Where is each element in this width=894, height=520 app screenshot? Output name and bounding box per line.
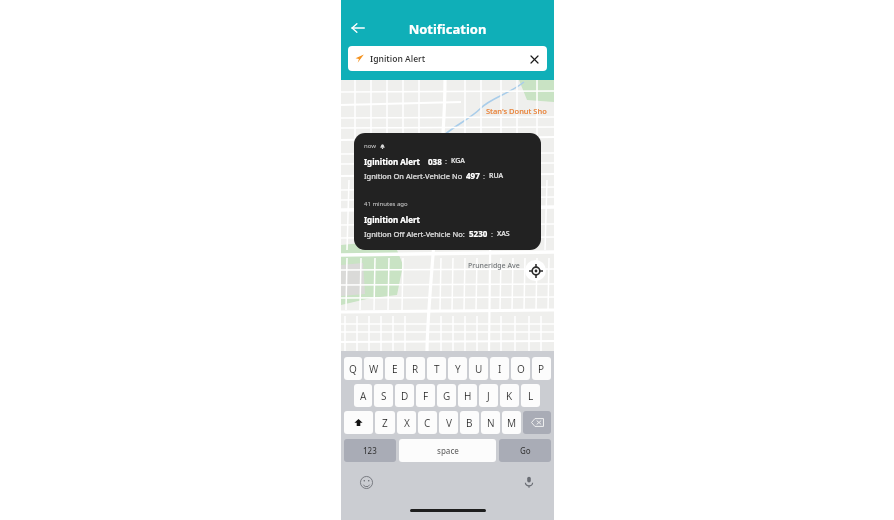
button[interactable]: Q bbox=[344, 357, 362, 380]
button[interactable]: P bbox=[532, 357, 551, 380]
staticText: E bbox=[392, 362, 398, 376]
button[interactable]: Go bbox=[499, 439, 551, 462]
staticText: 41 minutes ago bbox=[364, 200, 408, 208]
button[interactable]: B bbox=[460, 411, 479, 434]
button[interactable]: U bbox=[469, 357, 488, 380]
button[interactable]: O bbox=[511, 357, 530, 380]
button[interactable]: N bbox=[481, 411, 500, 434]
button[interactable]: Y bbox=[448, 357, 467, 380]
button[interactable]: Shift bbox=[344, 411, 373, 434]
button[interactable]: W bbox=[364, 357, 383, 380]
button[interactable]: I bbox=[490, 357, 509, 380]
button[interactable]: L bbox=[521, 384, 540, 407]
button[interactable]: J bbox=[479, 384, 498, 407]
staticText: Z bbox=[382, 416, 388, 430]
staticText: H bbox=[464, 389, 472, 403]
staticText: T bbox=[434, 362, 440, 376]
button[interactable]: Back bbox=[344, 14, 372, 42]
staticText: Go bbox=[520, 445, 531, 456]
staticText: D bbox=[401, 389, 409, 403]
button[interactable]: H bbox=[458, 384, 477, 407]
staticText: 123 bbox=[363, 445, 377, 456]
button[interactable]: Backspace bbox=[523, 411, 551, 434]
button[interactable]: M bbox=[502, 411, 521, 434]
staticText: B bbox=[466, 416, 473, 430]
staticText: Y bbox=[455, 362, 461, 376]
staticText: 038 bbox=[428, 156, 442, 167]
staticText: Iginition Alert bbox=[364, 156, 421, 167]
staticText: : bbox=[445, 156, 448, 166]
button[interactable]: K bbox=[500, 384, 519, 407]
staticText: A bbox=[360, 389, 367, 403]
button[interactable]: F bbox=[416, 384, 435, 407]
staticText: 497 bbox=[466, 170, 480, 181]
button[interactable]: Voice input bbox=[521, 474, 537, 490]
staticText: Pruneridge Ave bbox=[468, 261, 520, 271]
staticText: now bbox=[364, 142, 376, 150]
staticText: Ignition Alert bbox=[370, 53, 528, 65]
staticText: U bbox=[475, 362, 483, 376]
staticText: F bbox=[423, 389, 429, 403]
button[interactable]: C bbox=[418, 411, 437, 434]
staticText: J bbox=[487, 389, 490, 403]
button[interactable]: D bbox=[395, 384, 414, 407]
staticText: O bbox=[517, 362, 525, 376]
button[interactable]: Emoji bbox=[358, 474, 374, 490]
staticText: N bbox=[487, 416, 495, 430]
button[interactable]: X bbox=[397, 411, 416, 434]
staticText: L bbox=[528, 389, 534, 403]
staticText: W bbox=[369, 362, 379, 376]
button[interactable]: V bbox=[439, 411, 458, 434]
staticText: 5230 bbox=[469, 228, 488, 239]
button[interactable]: T bbox=[427, 357, 446, 380]
staticText: Ignition Off Alert-Vehicle No: bbox=[364, 229, 465, 239]
button[interactable]: Z bbox=[375, 411, 395, 434]
staticText: RUA bbox=[489, 171, 504, 181]
button[interactable]: R bbox=[406, 357, 425, 380]
staticText: Notification bbox=[341, 20, 554, 38]
staticText: : bbox=[483, 171, 486, 181]
staticText: Ignition On Alert-Vehicle No bbox=[364, 171, 463, 181]
button[interactable]: My location bbox=[525, 260, 546, 281]
staticText: K bbox=[506, 389, 513, 403]
button[interactable]: G bbox=[437, 384, 456, 407]
staticText: X bbox=[404, 416, 410, 430]
staticText: V bbox=[446, 416, 452, 430]
staticText: G bbox=[443, 389, 451, 403]
button[interactable]: S bbox=[374, 384, 393, 407]
button[interactable]: space bbox=[399, 439, 496, 462]
button[interactable]: E bbox=[385, 357, 404, 380]
staticText: Stan's Donut Sho bbox=[486, 106, 547, 116]
staticText: : bbox=[491, 229, 494, 239]
staticText: I bbox=[498, 362, 502, 376]
staticText: space bbox=[437, 445, 459, 456]
staticText: C bbox=[424, 416, 431, 430]
button[interactable]: A bbox=[354, 384, 372, 407]
staticText: R bbox=[412, 362, 419, 376]
button[interactable]: Ignition Alert bbox=[348, 46, 547, 71]
staticText: P bbox=[538, 362, 545, 376]
button[interactable]: now bbox=[354, 133, 541, 250]
staticText: KGA bbox=[451, 156, 465, 166]
staticText: S bbox=[381, 389, 387, 403]
button[interactable]: Clear bbox=[528, 53, 540, 65]
staticText: M bbox=[507, 416, 517, 430]
staticText: XAS bbox=[497, 229, 510, 239]
staticText: Iginition Alert bbox=[364, 214, 421, 225]
staticText: Q bbox=[349, 362, 357, 376]
button[interactable]: 123 bbox=[344, 439, 396, 462]
